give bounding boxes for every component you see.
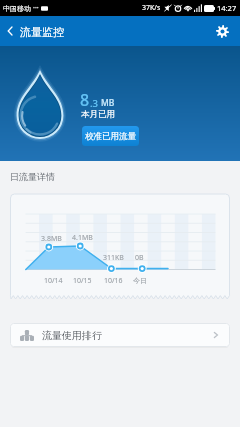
staticText: 校准已用流量 bbox=[85, 131, 136, 142]
staticText: 14:27 bbox=[217, 3, 237, 13]
button[interactable]: Settings bbox=[208, 16, 236, 46]
staticText: 0B bbox=[135, 253, 144, 263]
staticText: 3.8MB bbox=[41, 234, 62, 244]
staticText: 流量监控 bbox=[20, 25, 64, 39]
button[interactable]: Back bbox=[0, 16, 20, 46]
staticText: 中国移动 bbox=[3, 4, 31, 13]
staticText: 日流量详情 bbox=[10, 171, 55, 182]
staticText: ••• bbox=[33, 5, 39, 12]
staticText: 4.1MB bbox=[72, 233, 93, 243]
button[interactable]: 校准已用流量 bbox=[82, 126, 139, 146]
staticText: 37K/s bbox=[142, 3, 161, 13]
staticText: 8 bbox=[80, 89, 90, 111]
staticText: .3 bbox=[90, 97, 99, 110]
staticText: 311KB bbox=[103, 253, 124, 263]
staticText: 流量使用排行 bbox=[42, 329, 102, 342]
staticText: 本月已用 bbox=[81, 109, 115, 120]
staticText: MB bbox=[101, 97, 115, 109]
staticText: 今日 bbox=[133, 276, 147, 285]
staticText: 10/16 bbox=[104, 276, 123, 286]
staticText: 10/14 bbox=[44, 276, 63, 286]
button[interactable]: 流量使用排行 bbox=[10, 323, 230, 347]
staticText: 10/15 bbox=[73, 276, 92, 286]
